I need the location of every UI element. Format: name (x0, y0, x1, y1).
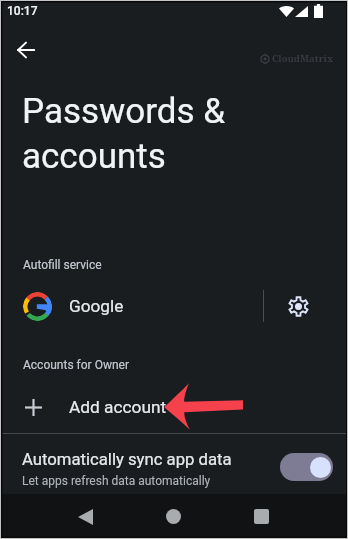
button[interactable] (280, 453, 333, 481)
staticText: CloudMatrix (272, 52, 334, 65)
button[interactable]: Autofill settings (280, 288, 316, 324)
button[interactable]: Recent apps (243, 498, 280, 535)
staticText: Accounts for Owner (23, 358, 129, 372)
staticText: Let apps refresh data automatically (22, 474, 211, 488)
staticText: Add account (69, 397, 167, 417)
button[interactable]: Add account (0, 385, 348, 429)
staticText: Google (69, 296, 124, 316)
button[interactable]: Home (155, 498, 192, 535)
staticText: Autofill service (23, 258, 102, 272)
button[interactable]: Google (0, 282, 348, 330)
button[interactable]: Navigate up (8, 32, 44, 68)
button[interactable]: Back (67, 498, 104, 535)
staticText: Passwords & accounts (22, 91, 226, 177)
staticText: Automatically sync app data (22, 450, 232, 470)
staticText: 10:17 (7, 4, 38, 18)
